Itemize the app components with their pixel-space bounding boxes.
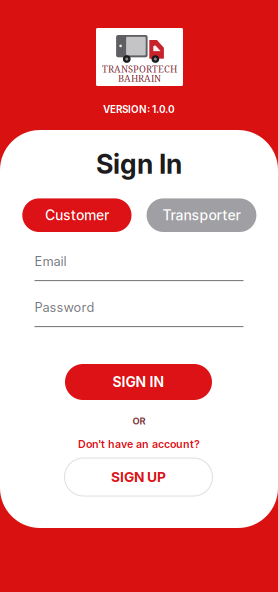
staticText: Customer [45, 207, 109, 224]
staticText: Password [34, 299, 94, 315]
button[interactable]: SIGN IN [65, 364, 212, 400]
staticText: SIGN UP [111, 469, 166, 485]
staticText: Transporter [162, 207, 240, 224]
button[interactable]: Don't have an account? [0, 436, 278, 452]
staticText: Don't have an account? [78, 437, 200, 450]
staticText: Email [34, 253, 66, 269]
staticText: Sign In [96, 148, 182, 180]
staticText: BAHRAIN [118, 72, 161, 84]
staticText: SIGN IN [112, 374, 164, 390]
button[interactable]: Transporter [147, 198, 256, 232]
button[interactable]: SIGN UP [64, 458, 212, 496]
button[interactable]: Customer [22, 198, 131, 232]
staticText: TRANSPORTECH [102, 62, 177, 75]
staticText: VERSION: 1.0.0 [103, 103, 175, 115]
staticText: OR [132, 415, 145, 427]
